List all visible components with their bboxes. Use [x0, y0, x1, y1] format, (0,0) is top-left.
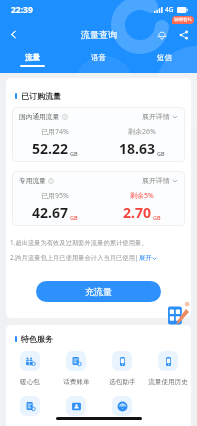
staticText: 特色服务: [21, 334, 53, 344]
button[interactable]: 问卷调查: [162, 300, 192, 330]
staticText: 流量: [25, 53, 40, 62]
staticText: 短信: [157, 53, 172, 62]
button[interactable]: 话费账单: [53, 351, 99, 386]
staticText: 暖心包: [20, 378, 40, 386]
staticText: 2.70: [123, 203, 151, 222]
staticText: 已用95%: [41, 191, 69, 201]
button[interactable]: 展开详情: [142, 176, 178, 185]
staticText: GB: [70, 150, 78, 157]
button[interactable]: 充流量: [36, 281, 161, 302]
staticText: 选包助手: [109, 378, 136, 386]
button[interactable]: 流量使用历史: [145, 351, 191, 386]
staticText: 2.跨月流量包上月已使用量会计入当月已使用|: [10, 253, 139, 262]
button[interactable]: 暖心包: [6, 351, 53, 386]
staticText: 展开详情: [142, 176, 170, 185]
staticText: 4G: [165, 5, 174, 14]
staticText: 剩余26%: [128, 127, 156, 137]
staticText: 充流量: [85, 286, 112, 297]
staticText: 22:39: [11, 4, 33, 16]
button[interactable]: 展开: [139, 254, 157, 262]
staticText: 剩余5%: [130, 191, 154, 201]
staticText: 展开: [139, 254, 152, 262]
staticText: GB: [157, 150, 165, 157]
staticText: 语音: [91, 53, 106, 62]
button[interactable]: Service: [6, 396, 53, 416]
staticText: 话费账单: [63, 378, 90, 386]
staticText: 转赠有礼: [174, 17, 192, 23]
button[interactable]: Service: [53, 396, 99, 416]
staticText: GB: [153, 214, 161, 221]
staticText: 1.超出流量为有效及过期套外流量的累计使用量。: [10, 238, 148, 247]
staticText: 展开详情: [142, 112, 170, 121]
button[interactable]: Service: [99, 396, 145, 416]
button[interactable]: Share: [175, 26, 192, 43]
staticText: GB: [70, 214, 78, 221]
staticText: 42.67: [32, 203, 68, 222]
staticText: 流量查询: [81, 29, 117, 40]
staticText: 专用流量: [19, 177, 46, 185]
button[interactable]: 选包助手: [99, 351, 145, 386]
staticText: 国内通用流量: [19, 113, 60, 121]
staticText: 已用74%: [41, 127, 69, 137]
button[interactable]: 展开详情: [142, 112, 178, 121]
button[interactable]: 短信: [131, 49, 197, 73]
button[interactable]: Notifications: [153, 26, 170, 43]
staticText: 已订购流量: [21, 91, 61, 101]
button[interactable]: Back: [4, 25, 22, 43]
staticText: 18.63: [119, 139, 155, 158]
staticText: 流量使用历史: [148, 378, 188, 386]
button[interactable]: 语音: [65, 49, 131, 73]
button[interactable]: 流量: [0, 49, 65, 73]
staticText: 52.22: [32, 139, 68, 158]
